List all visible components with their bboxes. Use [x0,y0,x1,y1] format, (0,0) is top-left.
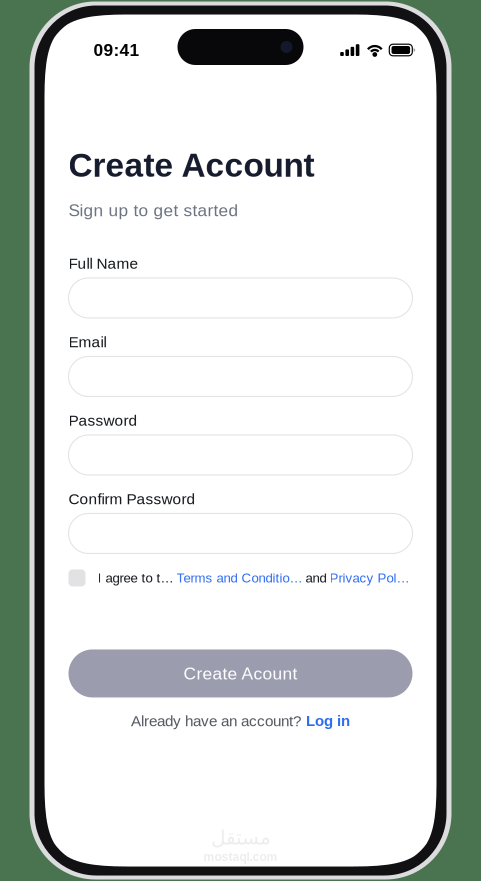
staticText: Already have an account? [131,712,301,729]
staticText: Confirm Password [68,490,195,507]
staticText: Create Acount [183,664,297,683]
staticText: مستقل [210,826,270,849]
button[interactable]: Full Name [68,278,412,318]
staticText: Privacy Policy [329,571,411,585]
staticText: 09:41 [93,40,139,60]
staticText: Sign up to get started [68,201,238,220]
staticText: Full Name [68,255,138,272]
button[interactable]: Confirm Password [68,513,412,553]
button[interactable]: Log in [306,713,350,729]
button[interactable]: Create Acount [68,649,412,697]
staticText: Email [68,333,106,350]
staticText: Terms and Conditions [176,571,302,585]
button[interactable]: I agree to the terms [68,569,85,586]
button[interactable]: Privacy Policy [329,571,411,585]
staticText: and [305,571,326,585]
button[interactable]: Password [68,435,412,475]
staticText: Password [68,412,137,429]
staticText: mostaql.com [203,850,277,863]
button[interactable]: Terms and Conditions [176,571,302,585]
staticText: Log in [306,713,350,729]
staticText: I agree to the [97,571,173,585]
button[interactable]: Email [68,356,412,396]
staticText: Create Account [68,146,314,184]
